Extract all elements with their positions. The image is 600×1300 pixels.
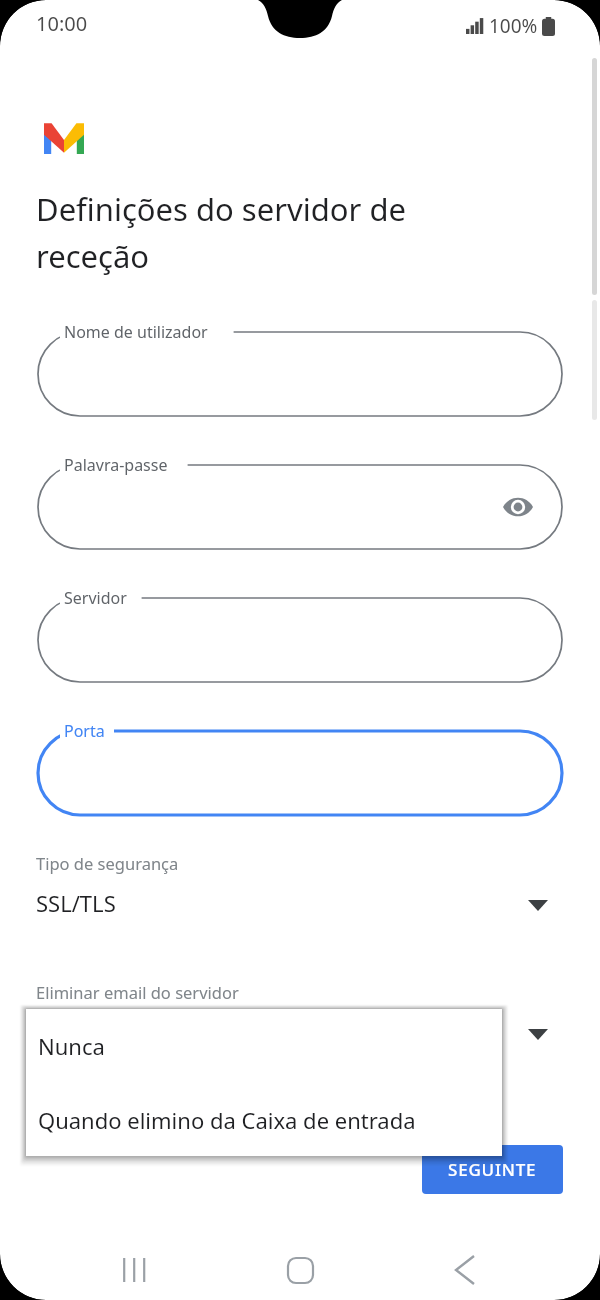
staticText: Eliminar email do servidor — [36, 981, 239, 1003]
button[interactable]: Tipo de segurança — [36, 852, 564, 930]
button[interactable]: Recentes — [105, 1240, 165, 1300]
staticText: 100% — [489, 13, 538, 39]
staticText: Porta — [64, 720, 105, 742]
button[interactable]: Palavra-passe — [38, 465, 562, 549]
button[interactable]: Quando elimino da Caixa de entrada — [26, 1083, 502, 1156]
staticText: Palavra-passe — [64, 454, 168, 476]
button[interactable]: Porta — [38, 731, 562, 815]
button[interactable]: Nome de utilizador — [38, 332, 562, 416]
staticText: SEGUINTE — [448, 1158, 537, 1181]
staticText: Quando elimino da Caixa de entrada — [38, 1105, 416, 1135]
button[interactable]: Servidor — [38, 598, 562, 682]
button[interactable]: SEGUINTE — [422, 1145, 563, 1194]
button[interactable]: Início — [270, 1240, 330, 1300]
staticText: Definições do servidor de receção — [36, 188, 506, 277]
button[interactable]: Voltar — [435, 1240, 495, 1300]
staticText: Tipo de segurança — [36, 852, 179, 874]
button[interactable]: Nunca — [26, 1009, 502, 1083]
staticText: SSL/TLS — [36, 888, 116, 918]
staticText: Nunca — [38, 1031, 105, 1061]
staticText: 10:00 — [36, 10, 88, 37]
staticText: Nome de utilizador — [64, 321, 208, 343]
staticText: Servidor — [64, 587, 127, 609]
button[interactable]: Mostrar palavra-passe — [496, 485, 540, 529]
button[interactable]: Eliminar email do servidor — [36, 981, 564, 1059]
